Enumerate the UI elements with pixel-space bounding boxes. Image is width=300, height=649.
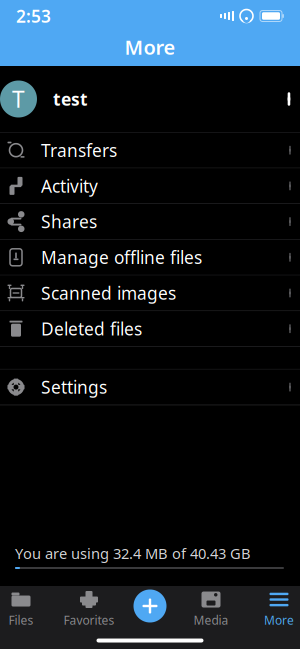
button[interactable]: T [0, 66, 300, 132]
staticText: 2:53 [16, 4, 51, 27]
staticText: test [53, 87, 88, 110]
staticText: Favorites [63, 612, 114, 628]
staticText: Activity [41, 174, 98, 197]
staticText: Transfers [41, 139, 117, 162]
button[interactable]: Favorites [59, 587, 119, 631]
button[interactable]: Settings [0, 370, 300, 405]
staticText: Files [8, 612, 33, 628]
staticText: More [124, 34, 175, 60]
button[interactable]: Transfers [0, 133, 300, 168]
staticText: More [264, 612, 294, 628]
button[interactable]: Shares [0, 204, 300, 240]
staticText: T [12, 84, 25, 114]
staticText: You are using 32.4 MB of 40.43 GB [15, 543, 251, 563]
button[interactable]: More [249, 587, 300, 631]
staticText: Media [193, 612, 228, 628]
button[interactable]: Media [181, 587, 241, 631]
staticText: Settings [41, 376, 107, 399]
button[interactable]: Deleted files [0, 311, 300, 347]
button[interactable]: Manage offline files [0, 240, 300, 275]
button[interactable]: Activity [0, 168, 300, 204]
button[interactable]: Add [130, 586, 170, 626]
button[interactable]: Files [0, 587, 51, 631]
staticText: Manage offline files [41, 246, 202, 269]
button[interactable]: Scanned images [0, 275, 300, 311]
staticText: Shares [41, 210, 97, 233]
staticText: Scanned images [41, 281, 176, 304]
staticText: Deleted files [41, 317, 142, 340]
